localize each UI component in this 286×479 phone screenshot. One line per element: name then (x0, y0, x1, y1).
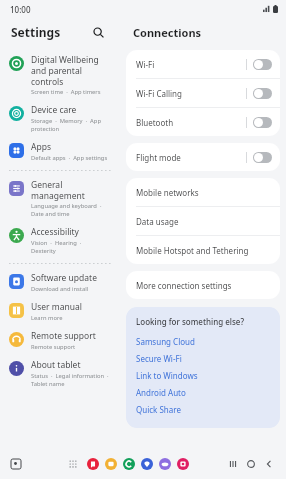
button[interactable]: App three (122, 457, 136, 471)
staticText: Android Auto (136, 387, 186, 398)
button[interactable]: Data usage (126, 207, 280, 235)
staticText: More connection settings (136, 280, 232, 291)
button[interactable]: Recents (224, 455, 242, 473)
button[interactable]: General management (0, 175, 122, 222)
staticText: Remote support (31, 330, 96, 342)
staticText: Settings (11, 24, 61, 40)
staticText: Mobile networks (136, 187, 199, 198)
staticText: Bluetooth (136, 117, 246, 128)
staticText: Data usage (136, 216, 179, 227)
staticText: Screen time · App timers (31, 88, 101, 96)
staticText: Link to Windows (136, 370, 198, 381)
button[interactable]: Screenshot (8, 456, 24, 472)
button[interactable]: More connection settings (126, 271, 280, 299)
staticText: User manual (31, 301, 82, 313)
button[interactable]: App one (86, 457, 100, 471)
button[interactable]: Software update (0, 268, 122, 297)
button[interactable]: Samsung Cloud (136, 333, 270, 350)
staticText: Default apps · App settings (31, 154, 108, 162)
staticText: Mobile Hotspot and Tethering (136, 245, 249, 256)
button[interactable]: Toggle (253, 117, 272, 128)
staticText: Samsung Cloud (136, 336, 195, 347)
button[interactable]: Mobile Hotspot and Tethering (126, 236, 280, 264)
button[interactable]: Android Auto (136, 384, 270, 401)
button[interactable]: Back (260, 455, 278, 473)
staticText: About tablet (31, 359, 81, 371)
button[interactable]: Secure Wi-Fi (136, 350, 270, 367)
button[interactable]: Accessibility (0, 222, 122, 259)
button[interactable]: Link to Windows (136, 367, 270, 384)
staticText: Remote support (31, 343, 76, 351)
staticText: Software update (31, 272, 97, 284)
staticText: Storage · Memory · App protection (31, 117, 101, 133)
button[interactable]: Apps (66, 457, 80, 471)
button[interactable]: Mobile networks (126, 178, 280, 206)
button[interactable]: Digital Wellbeing and parental controls (0, 50, 122, 100)
button[interactable]: Toggle (253, 59, 272, 70)
staticText: Wi-Fi (136, 59, 246, 70)
button[interactable]: Toggle (253, 152, 272, 163)
button[interactable]: Toggle (253, 88, 272, 99)
staticText: Quick Share (136, 404, 181, 415)
staticText: Looking for something else? (136, 316, 244, 327)
staticText: 10:00 (10, 4, 31, 15)
staticText: Learn more (31, 314, 63, 322)
button[interactable]: Wi-Fi (126, 50, 280, 78)
staticText: Device care (31, 104, 77, 116)
button[interactable]: Search (88, 22, 108, 42)
button[interactable]: About tablet (0, 355, 122, 392)
staticText: Vision · Hearing · Dexterity (31, 239, 82, 255)
button[interactable]: User manual (0, 297, 122, 326)
staticText: Status · Legal information · Tablet name (31, 372, 109, 388)
staticText: Language and keyboard · Date and time (31, 202, 102, 218)
staticText: Apps (31, 141, 51, 153)
button[interactable]: Home (242, 455, 260, 473)
button[interactable]: Bluetooth (126, 108, 280, 136)
button[interactable]: Wi-Fi Calling (126, 79, 280, 107)
staticText: Flight mode (136, 152, 246, 163)
staticText: Wi-Fi Calling (136, 88, 246, 99)
staticText: Accessibility (31, 226, 79, 238)
button[interactable]: Flight mode (126, 143, 280, 171)
button[interactable]: Apps (0, 137, 122, 166)
staticText: Download and install (31, 285, 89, 293)
button[interactable]: App six (176, 457, 190, 471)
button[interactable]: App five (158, 457, 172, 471)
button[interactable]: App two (104, 457, 118, 471)
button[interactable]: Remote support (0, 326, 122, 355)
button[interactable]: Device care (0, 100, 122, 137)
staticText: Connections (133, 25, 202, 40)
staticText: General management (31, 179, 85, 201)
staticText: Digital Wellbeing and parental controls (31, 54, 99, 87)
button[interactable]: App four (140, 457, 154, 471)
staticText: Secure Wi-Fi (136, 353, 182, 364)
button[interactable]: Quick Share (136, 401, 270, 418)
